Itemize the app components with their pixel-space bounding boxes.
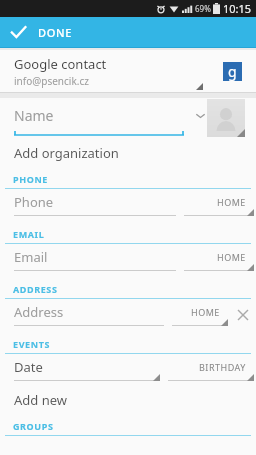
staticText: GROUPS: [13, 420, 54, 432]
staticText: ADDRESS: [13, 283, 58, 295]
staticText: HOME: [217, 251, 246, 263]
staticText: HOME: [191, 306, 220, 318]
button[interactable]: Name: [14, 98, 206, 139]
staticText: Date: [14, 358, 43, 376]
staticText: Address: [14, 303, 64, 321]
button[interactable]: Google contact: [0, 50, 256, 93]
staticText: info@psencik.cz: [14, 74, 89, 88]
button[interactable]: HOME: [184, 244, 256, 276]
staticText: Google contact: [14, 55, 107, 73]
staticText: BIRTHDAY: [199, 361, 246, 373]
staticText: HOME: [217, 196, 246, 208]
button[interactable]: Phone: [14, 189, 184, 221]
staticText: DONE: [38, 25, 73, 40]
button[interactable]: Email: [14, 244, 184, 276]
button[interactable]: Delete address: [230, 299, 256, 331]
staticText: Add new: [14, 391, 68, 409]
button[interactable]: Date: [14, 354, 168, 386]
staticText: Phone: [14, 193, 54, 211]
button[interactable]: Add organization: [0, 139, 256, 166]
button[interactable]: HOME: [184, 189, 256, 221]
staticText: Add organization: [14, 144, 119, 162]
staticText: 10:15: [223, 1, 252, 16]
button[interactable]: HOME: [172, 299, 230, 331]
button[interactable]: Address: [14, 299, 172, 331]
button[interactable]: DONE: [0, 17, 256, 48]
button[interactable]: Add new: [0, 386, 256, 413]
staticText: Name: [14, 106, 54, 125]
staticText: Email: [14, 248, 48, 266]
staticText: EMAIL: [13, 228, 45, 240]
button[interactable]: BIRTHDAY: [168, 354, 256, 386]
staticText: EVENTS: [13, 338, 50, 350]
button[interactable]: Add photo: [207, 99, 245, 137]
staticText: g: [228, 62, 237, 81]
staticText: 69%: [195, 3, 211, 14]
staticText: PHONE: [13, 173, 48, 185]
